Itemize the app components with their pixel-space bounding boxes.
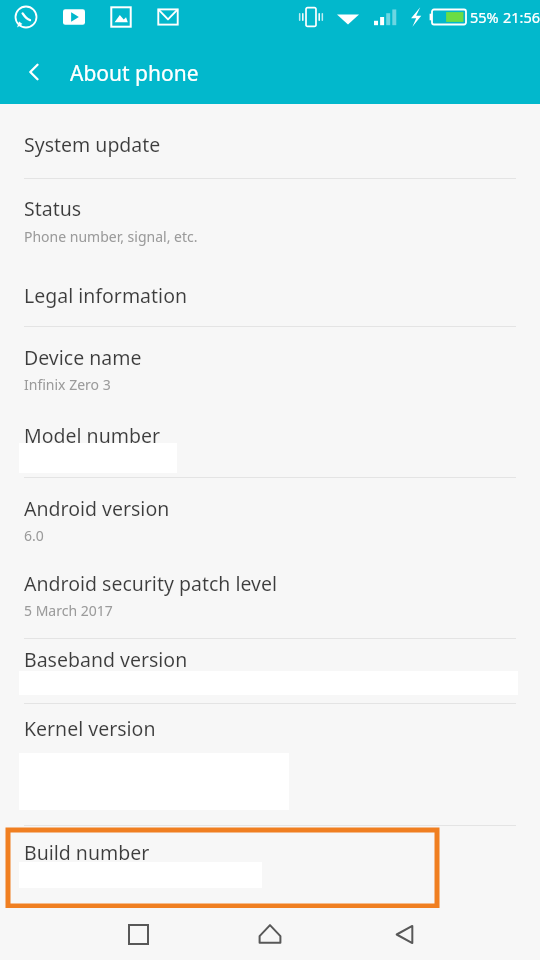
staticText: 5 March 2017 (24, 601, 113, 620)
staticText: System update (24, 131, 161, 158)
staticText: Infinix Zero 3 (24, 375, 111, 394)
button[interactable]: Android security patch level (0, 563, 540, 638)
staticText: Android version (24, 495, 170, 522)
button[interactable]: Baseband version (0, 639, 540, 703)
button[interactable]: Back (374, 908, 434, 960)
staticText: Model number (24, 422, 160, 449)
staticText: Baseband version (24, 646, 188, 673)
staticText: Legal information (24, 282, 187, 309)
button[interactable]: Model number (0, 412, 540, 477)
staticText: Android security patch level (24, 570, 277, 597)
button[interactable]: Device name (0, 327, 540, 412)
button[interactable]: System update (0, 104, 540, 178)
button[interactable]: Kernel version (0, 704, 540, 814)
staticText: Device name (24, 344, 142, 371)
staticText: Kernel version (24, 715, 156, 742)
button[interactable]: Navigate up (12, 50, 56, 94)
button[interactable]: Build number (0, 826, 540, 900)
staticText: Build number (24, 839, 150, 866)
staticText: About phone (70, 59, 199, 88)
staticText: Status (24, 195, 82, 222)
button[interactable]: Legal information (0, 265, 540, 326)
button[interactable]: Recent apps (108, 908, 168, 960)
staticText: 6.0 (24, 526, 44, 545)
button[interactable]: Android version (0, 478, 540, 563)
button[interactable]: Status (0, 179, 540, 265)
button[interactable]: Home (240, 908, 300, 960)
staticText: Phone number, signal, etc. (24, 227, 198, 246)
staticText: 21:56 (503, 7, 540, 27)
staticText: 55% (470, 7, 499, 27)
